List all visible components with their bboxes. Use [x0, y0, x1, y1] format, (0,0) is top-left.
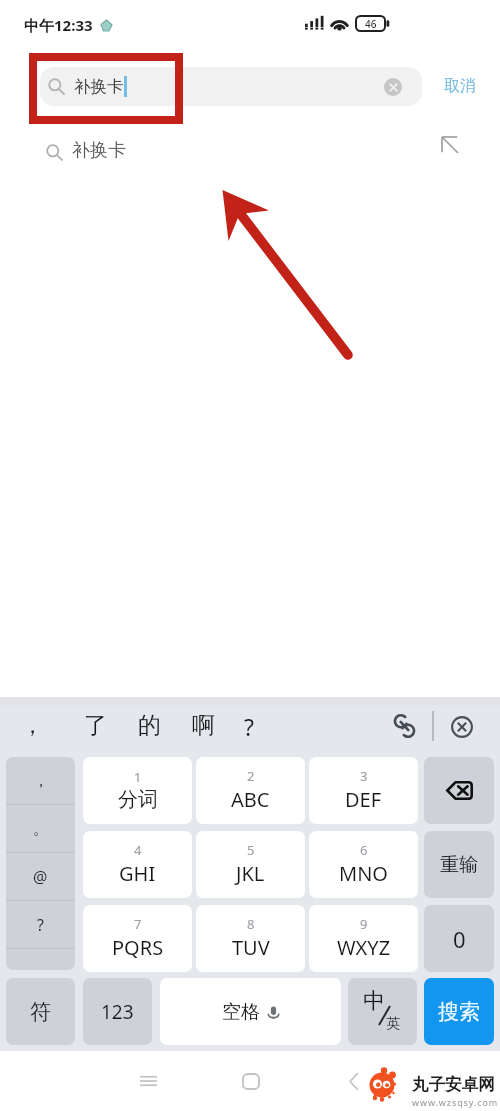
staticText: 取消 — [444, 76, 476, 96]
staticText: 搜索 — [438, 999, 480, 1025]
button[interactable]: 了 — [84, 711, 107, 740]
staticText: 分词 — [118, 787, 158, 812]
staticText: WXYZ — [337, 934, 391, 961]
button[interactable]: 搜索 — [424, 978, 494, 1045]
staticText: @ — [33, 866, 48, 888]
staticText: 46 — [365, 17, 377, 31]
staticText: 空格 — [222, 1000, 260, 1024]
button[interactable]: 符 — [6, 978, 75, 1045]
staticText: ， — [33, 771, 49, 791]
button[interactable]: 取消 — [432, 50, 488, 122]
staticText: 英 — [386, 1015, 400, 1033]
staticText: www.wzsqsy.com — [412, 1096, 499, 1108]
button[interactable]: Recents — [119, 1060, 177, 1102]
staticText: JKL — [236, 860, 265, 887]
button[interactable]: 9 — [309, 905, 418, 972]
staticText: 0 — [453, 924, 466, 954]
button[interactable]: 。 — [6, 805, 75, 852]
staticText: 123 — [101, 999, 134, 1025]
staticText: 中午12:33 — [24, 15, 93, 35]
staticText: 。 — [33, 819, 49, 839]
button[interactable]: Backspace — [424, 757, 494, 824]
staticText: 9 — [360, 915, 368, 933]
staticText: 1 — [134, 768, 142, 786]
button[interactable]: 的 — [138, 711, 161, 740]
staticText: ? — [37, 914, 44, 936]
staticText: ABC — [231, 786, 270, 813]
staticText: 7 — [134, 915, 142, 933]
button[interactable]: 中 — [348, 978, 417, 1045]
staticText: 重输 — [440, 853, 478, 877]
button[interactable]: 5 — [196, 831, 305, 898]
button[interactable]: ? — [244, 711, 254, 742]
staticText: 5 — [247, 841, 255, 859]
staticText: DEF — [345, 786, 382, 813]
other: Backspace — [446, 781, 473, 800]
button[interactable]: 1 — [83, 757, 192, 824]
staticText: 8 — [247, 915, 255, 933]
button[interactable]: 重输 — [424, 831, 494, 898]
staticText: PQRS — [112, 934, 164, 961]
button[interactable]: @ — [6, 853, 75, 900]
button[interactable]: 补换卡 — [0, 122, 500, 178]
button[interactable]: Home — [222, 1060, 280, 1102]
staticText: TUV — [232, 934, 270, 961]
button[interactable]: Hide keyboard — [451, 716, 473, 738]
button[interactable]: 4 — [83, 831, 192, 898]
staticText: 补换卡 — [72, 139, 126, 162]
button[interactable]: ， — [21, 711, 44, 740]
button[interactable]: 3 — [309, 757, 418, 824]
button[interactable]: 0 — [424, 905, 494, 972]
button[interactable]: Back — [330, 1060, 376, 1102]
staticText: 中 — [363, 987, 385, 1015]
button[interactable]: 补换卡 — [40, 67, 422, 106]
other: Use suggestion — [441, 136, 458, 153]
button[interactable]: 啊 — [192, 711, 215, 740]
button[interactable]: 6 — [309, 831, 418, 898]
button[interactable]: 123 — [83, 978, 152, 1045]
button[interactable]: 空格 — [160, 978, 341, 1045]
button[interactable]: ? — [6, 901, 75, 948]
staticText: 符 — [30, 999, 51, 1025]
staticText: 2 — [247, 767, 255, 785]
staticText: 3 — [360, 767, 368, 785]
button[interactable]: Clipboard — [394, 714, 415, 738]
staticText: 丸子安卓网 — [412, 1074, 495, 1095]
button[interactable]: 8 — [196, 905, 305, 972]
staticText: 6 — [360, 841, 368, 859]
staticText: 补换卡 — [74, 76, 124, 97]
staticText: GHI — [119, 860, 156, 887]
button[interactable]: ， — [6, 757, 75, 804]
button[interactable]: 7 — [83, 905, 192, 972]
button[interactable]: 2 — [196, 757, 305, 824]
staticText: MNO — [339, 860, 388, 887]
staticText: 4 — [134, 841, 142, 859]
button[interactable]: Clear — [384, 78, 402, 96]
